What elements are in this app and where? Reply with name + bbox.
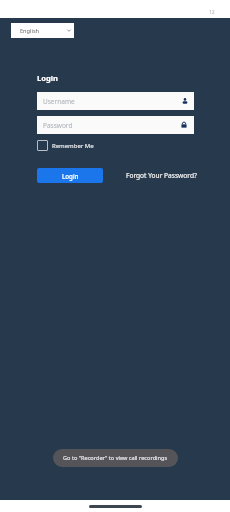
button[interactable]: Username [37, 92, 194, 110]
staticText: Login [62, 172, 79, 180]
other: Username [182, 98, 188, 104]
button[interactable]: Password [37, 116, 194, 134]
other: Password [180, 121, 188, 129]
button[interactable]: Login [37, 168, 103, 183]
button[interactable]: Remember Me [37, 140, 94, 151]
staticText: English [20, 27, 40, 35]
staticText: Forgot Your Password? [126, 171, 197, 180]
staticText: 12 [209, 9, 215, 16]
button[interactable]: English [11, 23, 74, 38]
staticText: Username [43, 97, 182, 106]
staticText: Go to "Recorder" to view call recordings [63, 454, 168, 462]
button[interactable]: Forgot Your Password? [126, 171, 206, 180]
staticText: Login [37, 73, 58, 83]
staticText: Remember Me [52, 142, 94, 150]
staticText: Password [43, 121, 180, 130]
